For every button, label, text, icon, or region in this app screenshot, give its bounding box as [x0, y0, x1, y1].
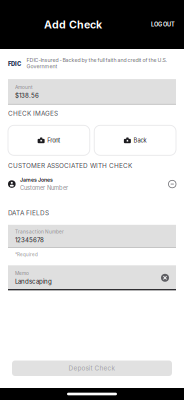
- staticText: LOG OUT: [151, 21, 175, 28]
- staticText: Amount: [15, 84, 33, 90]
- staticText: Front: [47, 137, 60, 144]
- button[interactable]: Deposit Check: [12, 360, 172, 376]
- staticText: Memo: [15, 270, 29, 276]
- staticText: Add Check: [44, 18, 102, 31]
- staticText: 12345678: [15, 236, 44, 244]
- staticText: CUSTOMER ASSOCIATED WITH CHECK: [8, 162, 132, 169]
- staticText: Deposit Check: [68, 364, 115, 372]
- staticText: James Jones: [20, 177, 53, 183]
- staticText: Customer Number: [20, 184, 68, 191]
- staticText: DATA FIELDS: [8, 209, 49, 217]
- staticText: Back: [133, 137, 146, 144]
- staticText: Landscaping: [15, 278, 52, 285]
- staticText: Transaction Number: [15, 229, 64, 235]
- staticText: $138.56: [15, 92, 39, 99]
- staticText: CHECK IMAGES: [8, 110, 58, 117]
- staticText: FDIC: [8, 60, 21, 67]
- button[interactable]: Remove customer: [168, 180, 176, 188]
- button[interactable]: Back: [94, 125, 176, 155]
- staticText: FDIC-Insured - Backed by the full faith …: [26, 57, 166, 70]
- button[interactable]: LOG OUT: [147, 16, 179, 33]
- staticText: *Required: [15, 252, 38, 257]
- button[interactable]: Clear memo: [161, 274, 169, 282]
- button[interactable]: Front: [8, 125, 90, 155]
